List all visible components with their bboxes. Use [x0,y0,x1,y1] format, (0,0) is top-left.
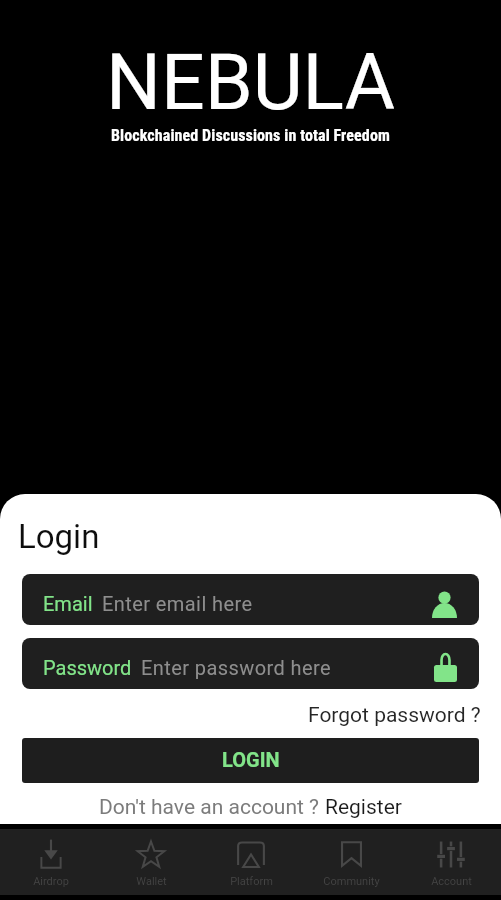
staticText: Wallet [136,875,167,888]
staticText: NEBULA [106,38,396,128]
staticText: Forgot password ? [308,703,481,728]
staticText: Account [431,875,472,888]
staticText: Login [18,517,100,556]
other: Account [432,591,457,618]
other: Community [341,841,362,867]
staticText: Register [325,795,402,820]
button[interactable]: Register [325,789,402,824]
button[interactable]: Account [401,829,501,892]
button[interactable]: Platform [201,829,301,892]
button[interactable]: Password [22,638,479,689]
staticText: Enter password here [141,656,332,679]
staticText: Email [43,592,93,615]
button[interactable]: Wallet [101,829,201,892]
other: Wallet [137,839,165,869]
staticText: Password [43,656,132,679]
staticText: Community [323,875,380,888]
button[interactable]: Email [22,574,479,625]
staticText: Blockchained Discussions in total Freedo… [111,126,390,145]
button[interactable]: LOGIN [22,738,479,783]
other: Password [434,653,457,682]
staticText: Don't have an account ? [99,795,325,820]
other: Airdrop [38,839,64,870]
staticText: Platform [230,875,273,888]
other: Platform [237,842,265,867]
button[interactable]: Airdrop [0,829,101,892]
button[interactable]: Forgot password ? [300,695,489,736]
staticText: Airdrop [33,875,69,888]
button[interactable]: Community [301,829,401,892]
other: Account [436,841,466,868]
staticText: Enter email here [102,592,253,615]
staticText: LOGIN [222,748,280,771]
